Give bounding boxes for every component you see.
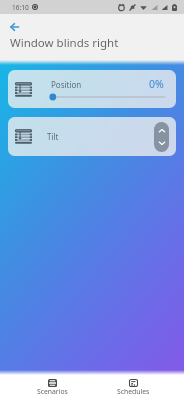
button[interactable]: Tilt up or down (154, 122, 169, 152)
staticText: Schedules (117, 387, 150, 396)
button[interactable]: Tilt (8, 117, 176, 156)
button[interactable]: Position (8, 70, 176, 108)
button[interactable]: Scenarios (11, 370, 93, 400)
staticText: 16:10 (12, 3, 29, 12)
staticText: Scenarios (37, 387, 68, 396)
staticText: Tilt (47, 131, 59, 142)
staticText: Window blinds right (10, 35, 119, 51)
staticText: 0% (149, 77, 164, 91)
button[interactable]: Back (5, 17, 24, 36)
button[interactable]: Schedules (93, 370, 173, 400)
staticText: Position (51, 79, 82, 90)
